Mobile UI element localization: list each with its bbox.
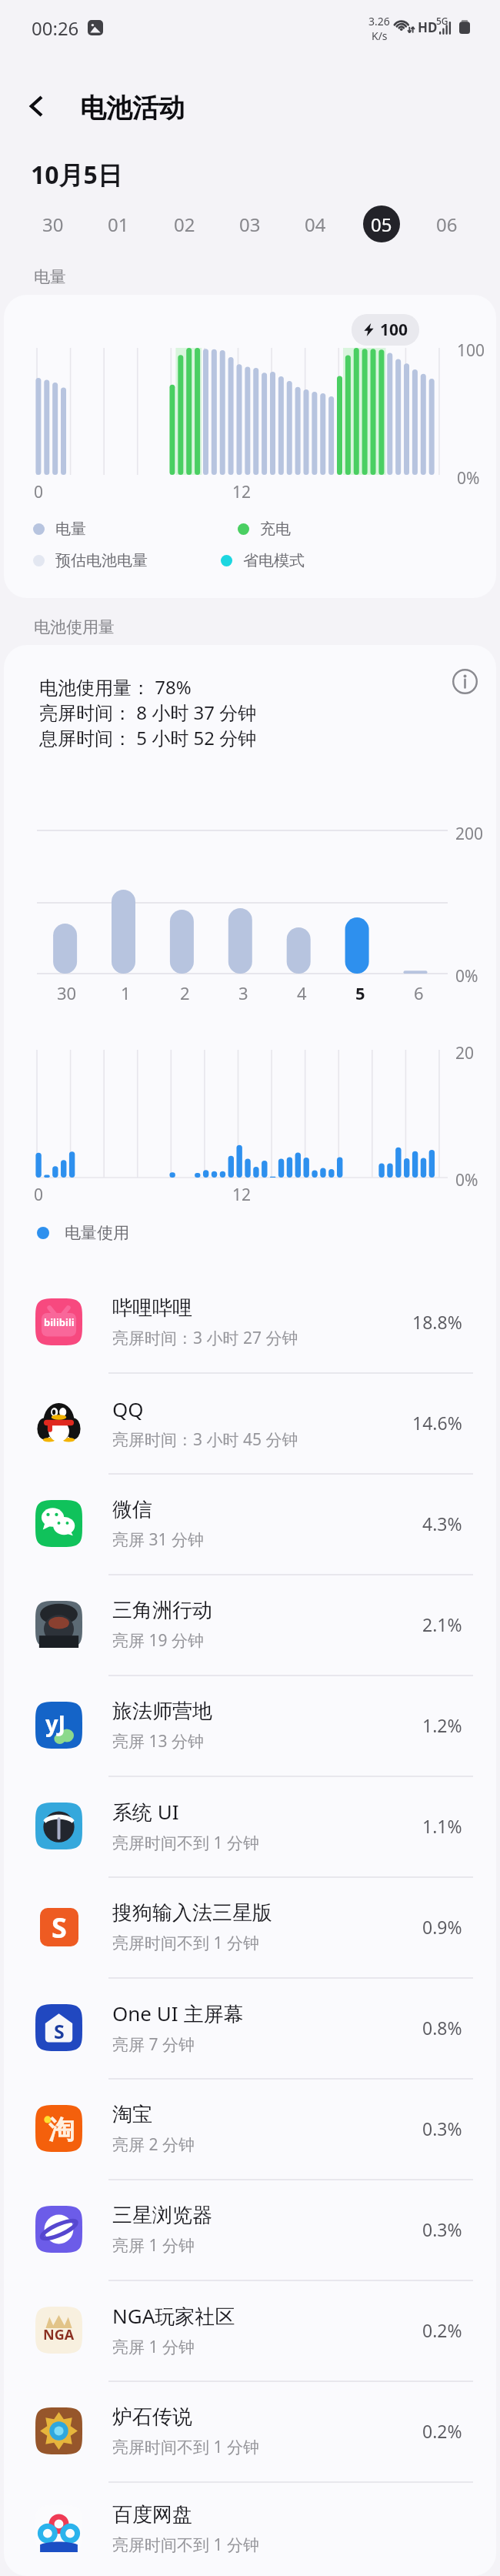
staticText: 电池活动 <box>80 92 185 125</box>
staticText: 电量使用 <box>65 1223 129 1243</box>
staticText: 20 <box>455 1042 475 1064</box>
staticText: 06 <box>436 212 458 237</box>
button[interactable]: QQ <box>4 1372 496 1473</box>
button[interactable]: 03 <box>232 205 268 242</box>
staticText: 30 <box>42 212 64 237</box>
staticText: 搜狗输入法三星版 <box>112 1900 272 1926</box>
staticText: 0.3% <box>422 2117 462 2140</box>
button[interactable]: 04 <box>297 205 334 242</box>
staticText: 01 <box>108 212 129 237</box>
staticText: 息屏时间： 5 小时 52 分钟 <box>39 725 257 750</box>
staticText: 电池使用量： 78% <box>39 674 192 700</box>
staticText: 0.9% <box>422 1915 462 1939</box>
button[interactable]: 05 <box>363 205 400 242</box>
button[interactable]: 炉石传说 <box>4 2381 496 2481</box>
staticText: 亮屏时间： 8 小时 37 分钟 <box>39 700 257 725</box>
button[interactable]: NGA <box>4 2280 496 2381</box>
staticText: 充电 <box>260 520 291 539</box>
button[interactable]: 06 <box>428 205 465 242</box>
staticText: 12 <box>232 1184 252 1206</box>
staticText: K/s <box>372 28 388 43</box>
staticText: 00:26 <box>32 15 79 41</box>
staticText: 2.1% <box>422 1612 462 1636</box>
staticText: yJ <box>45 1708 66 1738</box>
staticText: 18.8% <box>412 1310 462 1334</box>
button[interactable]: S <box>4 1876 496 1977</box>
staticText: NGA玩家社区 <box>112 2302 235 2330</box>
button[interactable]: 系统 UI <box>4 1776 496 1876</box>
staticText: 亮屏 1 分钟 <box>112 2336 195 2358</box>
staticText: 05 <box>371 212 392 237</box>
staticText: 亮屏时间：3 小时 27 分钟 <box>112 1327 298 1349</box>
staticText: 三星浏览器 <box>112 2203 212 2228</box>
button[interactable]: bilibili <box>4 1271 496 1372</box>
staticText: 亮屏 19 分钟 <box>112 1629 204 1652</box>
button[interactable]: 30 <box>35 205 72 242</box>
button[interactable]: 02 <box>166 205 203 242</box>
staticText: 0% <box>455 1169 478 1191</box>
staticText: S <box>52 1909 67 1946</box>
staticText: 哔哩哔哩 <box>112 1295 192 1321</box>
staticText: 电池使用量 <box>34 617 115 637</box>
staticText: 亮屏时间不到 1 分钟 <box>112 1932 259 1954</box>
staticText: 三角洲行动 <box>112 1598 212 1623</box>
staticText: 2 <box>180 981 190 1004</box>
staticText: 亮屏 2 分钟 <box>112 2133 195 2156</box>
staticText: 0.2% <box>422 2318 462 2342</box>
staticText: 02 <box>174 212 195 237</box>
staticText: 预估电池电量 <box>55 551 148 570</box>
staticText: 系统 UI <box>112 1798 179 1826</box>
staticText: 10月5日 <box>31 158 122 192</box>
button[interactable]: 三角洲行动 <box>4 1574 496 1675</box>
staticText: 04 <box>305 212 326 237</box>
staticText: 亮屏时间不到 1 分钟 <box>112 2534 259 2556</box>
staticText: 亮屏 1 分钟 <box>112 2234 195 2257</box>
staticText: 亮屏 13 分钟 <box>112 1730 204 1752</box>
button[interactable]: 三星浏览器 <box>4 2179 496 2280</box>
button[interactable]: 淘 <box>4 2078 496 2179</box>
staticText: 100 <box>380 319 408 341</box>
staticText: 4 <box>297 981 307 1004</box>
button[interactable]: 微信 <box>4 1473 496 1574</box>
staticText: 亮屏 31 分钟 <box>112 1529 204 1551</box>
staticText: NGA <box>43 2325 75 2344</box>
button[interactable]: yJ <box>4 1675 496 1776</box>
staticText: HD <box>418 18 438 36</box>
staticText: 3 <box>238 981 248 1004</box>
staticText: 0.8% <box>422 2016 462 2040</box>
staticText: 炉石传说 <box>112 2404 192 2430</box>
button[interactable]: Info <box>446 663 483 700</box>
staticText: bilibili <box>44 1315 75 1329</box>
staticText: One UI 主屏幕 <box>112 2000 244 2027</box>
staticText: 0.2% <box>422 2419 462 2443</box>
button[interactable]: Back <box>15 85 58 128</box>
button[interactable]: S <box>4 1977 496 2078</box>
button[interactable]: 01 <box>100 205 137 242</box>
staticText: 0% <box>455 965 478 987</box>
staticText: 0.3% <box>422 2217 462 2241</box>
staticText: 百度网盘 <box>112 2502 192 2528</box>
staticText: 200 <box>455 823 484 845</box>
staticText: 3.26 <box>368 14 390 28</box>
staticText: 亮屏时间不到 1 分钟 <box>112 1832 259 1854</box>
staticText: 0 <box>34 1184 44 1206</box>
staticText: 6 <box>414 981 424 1004</box>
staticText: 4.3% <box>422 1512 462 1535</box>
staticText: 0% <box>457 467 480 489</box>
staticText: 1 <box>121 981 131 1004</box>
staticText: 5G <box>436 15 448 27</box>
staticText: 省电模式 <box>243 551 305 570</box>
staticText: 100 <box>457 339 485 362</box>
staticText: 淘 <box>48 2113 75 2147</box>
staticText: 30 <box>57 981 77 1004</box>
staticText: 淘宝 <box>112 2102 152 2127</box>
staticText: 1.2% <box>422 1713 462 1737</box>
button[interactable]: 百度网盘 <box>4 2481 496 2576</box>
staticText: 14.6% <box>412 1411 462 1435</box>
staticText: 亮屏时间不到 1 分钟 <box>112 2436 259 2458</box>
staticText: 亮屏时间：3 小时 45 分钟 <box>112 1428 298 1451</box>
staticText: 亮屏 7 分钟 <box>112 2033 195 2056</box>
staticText: S <box>54 2018 65 2044</box>
staticText: 5 <box>355 981 365 1004</box>
staticText: 旅法师营地 <box>112 1699 212 1724</box>
